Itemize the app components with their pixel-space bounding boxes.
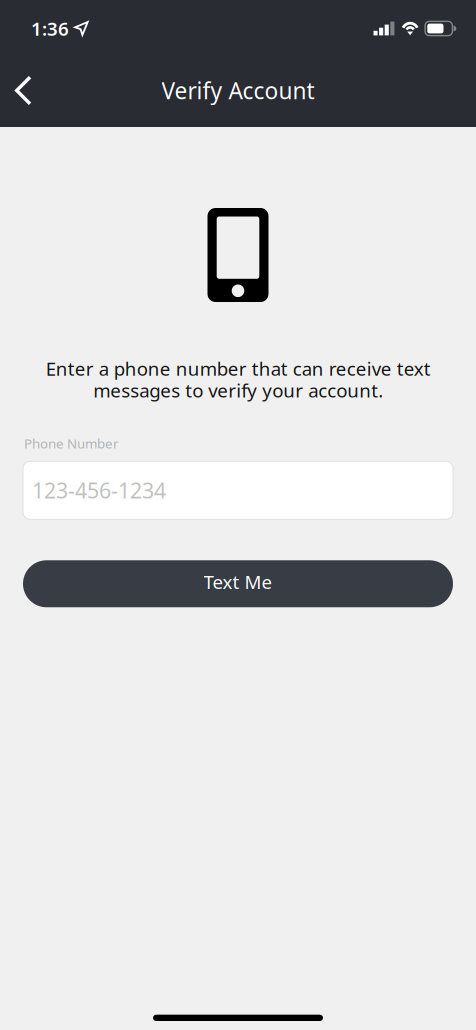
staticText: Text Me <box>203 569 272 594</box>
button[interactable]: Text Me <box>23 560 453 607</box>
staticText: Enter a phone number that can receive te… <box>45 356 430 403</box>
staticText: 1:36 <box>31 16 69 41</box>
staticText: Phone Number <box>24 435 119 452</box>
button[interactable]: Back <box>0 62 58 118</box>
staticText: Verify Account <box>161 75 314 105</box>
button[interactable]: Phone Number field <box>23 461 453 519</box>
staticText: 123-456-1234 <box>32 476 166 504</box>
